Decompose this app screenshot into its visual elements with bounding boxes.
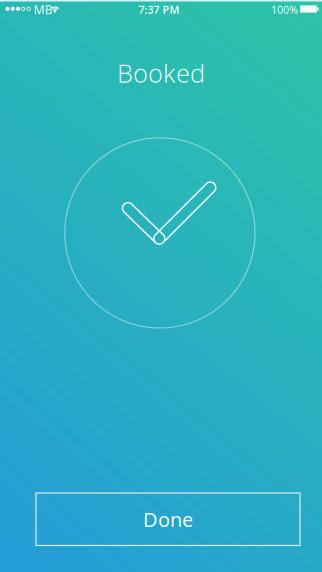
staticText: Done [143,506,193,533]
button[interactable]: Done [36,493,300,545]
staticText: Booked [117,56,205,90]
staticText: 100% [271,2,298,17]
staticText: MB [34,1,53,17]
staticText: 7:37 PM [138,2,179,17]
